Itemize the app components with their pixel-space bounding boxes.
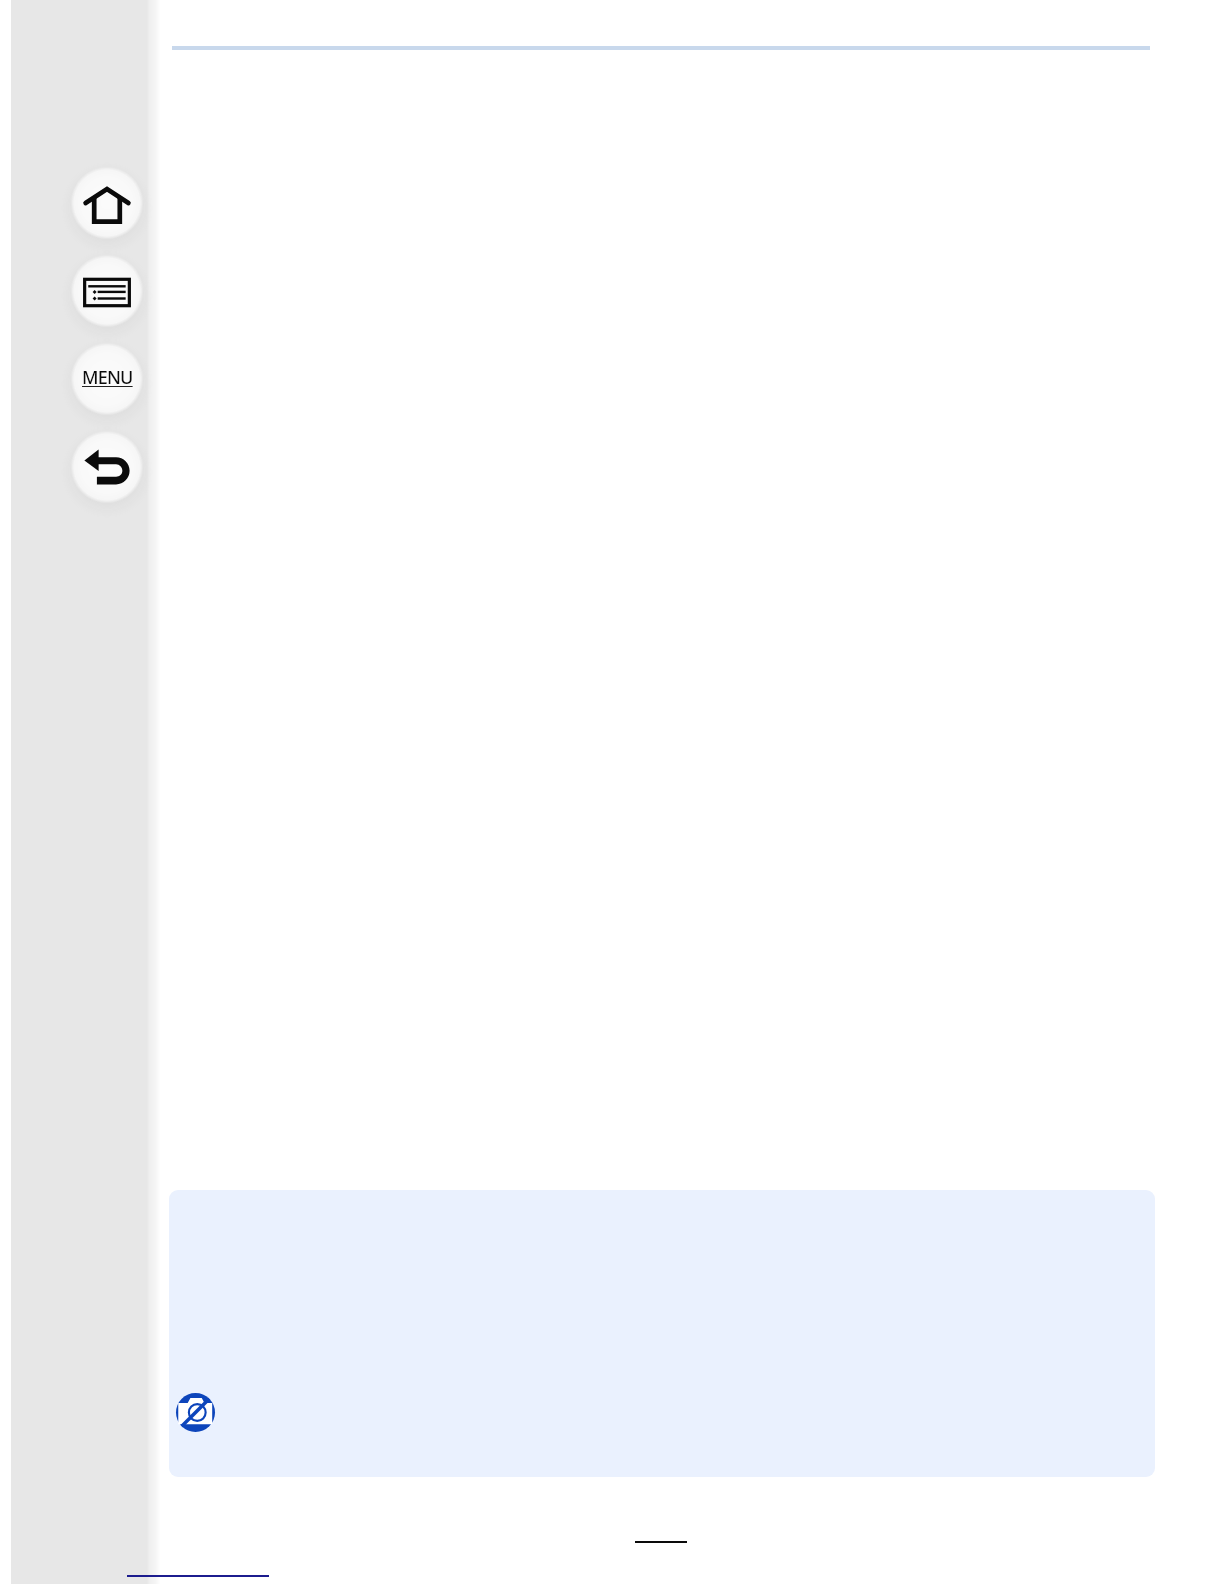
button[interactable]: No photography allowed [169,1190,1155,1477]
staticText: MENU [82,365,133,390]
button[interactable]: Home [61,157,153,249]
button[interactable]: Menu [61,333,153,425]
button[interactable]: No photography allowed [176,1393,215,1432]
button[interactable]: Table of contents [61,245,153,337]
button[interactable]: Back [61,421,153,513]
